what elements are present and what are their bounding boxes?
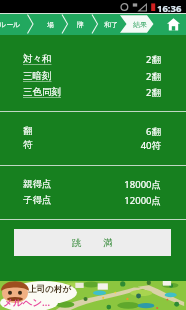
staticText: 6翻 (0, 125, 161, 138)
staticText: 三暗刻 (23, 70, 52, 82)
staticText: 2翻 (0, 53, 161, 66)
staticText: 2翻 (0, 70, 161, 83)
button[interactable]: 場 (32, 13, 68, 35)
button[interactable]: 三色同刻 (0, 83, 186, 99)
staticText: 2翻 (0, 86, 161, 99)
staticText: 満 (103, 237, 113, 249)
staticText: ルール (0, 20, 21, 29)
staticText: 40符 (0, 139, 161, 152)
staticText: 18000点 (0, 178, 161, 191)
button[interactable]: Home (161, 13, 186, 35)
staticText: 和了 (104, 20, 118, 29)
staticText: 翻 (23, 125, 33, 137)
button[interactable]: Advertisement (0, 281, 186, 310)
staticText: 結果 (133, 20, 147, 29)
staticText: 牌 (77, 20, 84, 29)
staticText: 跳 (72, 237, 82, 249)
button[interactable]: 対々和 (0, 50, 186, 66)
staticText: メルヘン… (3, 296, 51, 309)
staticText: 16:36 (157, 2, 182, 15)
staticText: 上司の村が (28, 284, 71, 295)
staticText: 12000点 (0, 194, 161, 207)
staticText: 子得点 (23, 194, 52, 206)
button[interactable]: 和了 (93, 13, 129, 35)
staticText: 三色同刻 (23, 86, 61, 98)
staticText: 符 (23, 139, 33, 151)
staticText: 対々和 (23, 53, 52, 65)
button[interactable]: ルール (0, 13, 28, 35)
staticText: 場 (47, 20, 54, 29)
button[interactable]: 跳 (14, 229, 171, 256)
button[interactable]: 三暗刻 (0, 67, 186, 83)
staticText: 親得点 (23, 178, 52, 190)
button[interactable]: 牌 (62, 13, 98, 35)
button[interactable]: 結果 (122, 13, 158, 35)
